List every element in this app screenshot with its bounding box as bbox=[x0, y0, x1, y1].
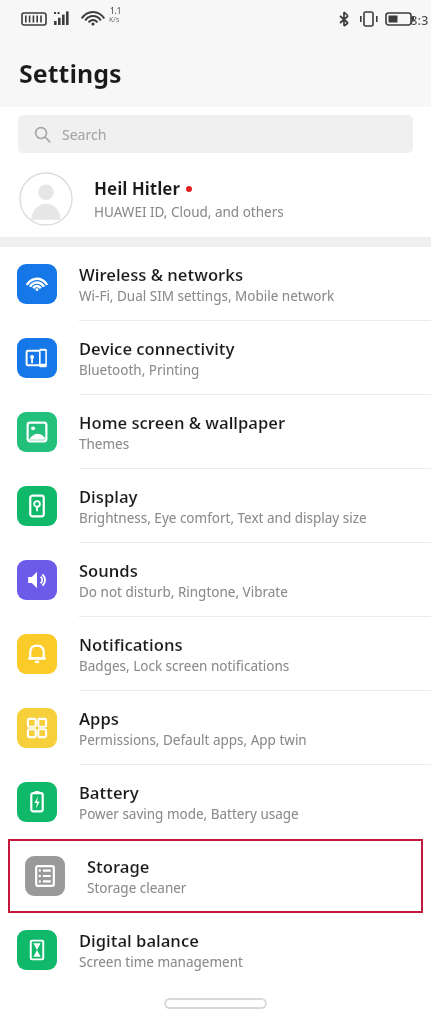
staticText: HUAWEI ID, Cloud, and others bbox=[94, 203, 284, 221]
staticText: Home screen & wallpaper bbox=[79, 411, 286, 433]
button[interactable]: Display bbox=[0, 469, 431, 543]
staticText: Storage bbox=[87, 855, 150, 877]
button[interactable]: Notifications bbox=[0, 617, 431, 691]
staticText: Themes bbox=[79, 435, 130, 453]
staticText: 1.1 bbox=[110, 5, 122, 16]
staticText: Notifications bbox=[79, 633, 183, 655]
staticText: Permissions, Default apps, App twin bbox=[79, 731, 307, 749]
button[interactable]: Heil Hitler bbox=[0, 161, 431, 237]
staticText: Settings bbox=[19, 56, 122, 90]
button[interactable]: Sounds bbox=[0, 543, 431, 617]
button[interactable]: Storage bbox=[8, 839, 423, 913]
button[interactable]: Digital balance bbox=[0, 913, 431, 987]
staticText: Search bbox=[62, 125, 107, 144]
button[interactable]: Device connectivity bbox=[0, 321, 431, 395]
button[interactable]: Search bbox=[18, 115, 413, 153]
button[interactable]: Battery bbox=[0, 765, 431, 839]
staticText: Sounds bbox=[79, 559, 138, 581]
staticText: Digital balance bbox=[79, 929, 199, 951]
staticText: Badges, Lock screen notifications bbox=[79, 657, 290, 675]
staticText: Apps bbox=[79, 707, 119, 729]
button[interactable]: Apps bbox=[0, 691, 431, 765]
staticText: Device connectivity bbox=[79, 337, 235, 359]
staticText: Battery bbox=[79, 781, 139, 803]
staticText: Bluetooth, Printing bbox=[79, 361, 200, 379]
staticText: Brightness, Eye comfort, Text and displa… bbox=[79, 509, 367, 527]
staticText: Power saving mode, Battery usage bbox=[79, 805, 299, 823]
staticText: Display bbox=[79, 485, 138, 507]
button[interactable]: Home gesture bar bbox=[164, 998, 267, 1009]
staticText: Heil Hitler bbox=[94, 177, 181, 200]
button[interactable]: Home screen & wallpaper bbox=[0, 395, 431, 469]
staticText: Do not disturb, Ringtone, Vibrate bbox=[79, 583, 288, 601]
staticText: Wireless & networks bbox=[79, 263, 244, 285]
staticText: Screen time management bbox=[79, 953, 243, 971]
staticText: Wi-Fi, Dual SIM settings, Mobile network bbox=[79, 287, 335, 305]
staticText: Storage cleaner bbox=[87, 879, 187, 897]
staticText: 8:3 bbox=[410, 11, 429, 29]
staticText: K/s bbox=[109, 15, 120, 25]
button[interactable]: Wireless & networks bbox=[0, 247, 431, 321]
